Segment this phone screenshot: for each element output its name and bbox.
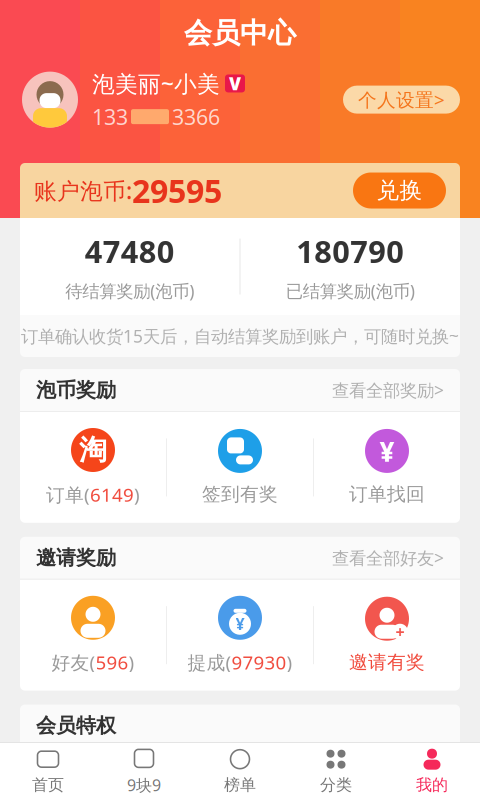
staticText: 榜单 xyxy=(224,775,256,795)
button[interactable]: + xyxy=(314,581,460,690)
staticText: 订单( xyxy=(46,482,90,507)
button[interactable]: 9块9 xyxy=(96,740,192,800)
button[interactable]: 查看全部奖励> xyxy=(332,378,444,401)
staticText: ¥ xyxy=(379,432,395,469)
staticText: 签到有奖 xyxy=(202,483,278,506)
button[interactable]: 兑换 xyxy=(353,172,446,208)
staticText: ¥ xyxy=(235,613,244,634)
button[interactable]: ¥ xyxy=(167,580,313,691)
staticText: 邀请奖励 xyxy=(36,545,116,570)
button[interactable]: 好友( xyxy=(20,580,166,691)
staticText: 个人设置> xyxy=(358,87,445,112)
staticText: 47480 xyxy=(85,231,175,271)
staticText: + xyxy=(395,621,404,642)
staticText: ) xyxy=(286,650,292,675)
staticText: 9块9 xyxy=(127,774,161,796)
button[interactable]: 我的 xyxy=(384,741,480,800)
staticText: 待结算奖励(泡币) xyxy=(65,279,194,302)
button[interactable]: 榜单 xyxy=(192,741,288,800)
staticText: 订单确认收货15天后，自动结算奖励到账户，可随时兑换~ xyxy=(21,324,459,347)
button[interactable]: 首页 xyxy=(0,741,96,800)
staticText: 淘 xyxy=(79,433,107,467)
staticText: 6149 xyxy=(90,482,134,507)
staticText: 兑换 xyxy=(376,177,422,204)
staticText: 提成( xyxy=(187,650,231,675)
staticText: 首页 xyxy=(32,775,64,795)
button[interactable]: 个人设置> xyxy=(343,86,460,114)
staticText: 180790 xyxy=(296,231,404,271)
staticText: 133 xyxy=(92,102,128,131)
staticText: ) xyxy=(134,482,140,507)
staticText: 29595 xyxy=(132,169,222,212)
button[interactable]: 签到有奖 xyxy=(167,413,313,522)
button[interactable]: ¥ xyxy=(314,413,460,522)
staticText: ) xyxy=(128,650,134,675)
staticText: 已结算奖励(泡币) xyxy=(286,279,415,302)
staticText: V xyxy=(229,72,241,95)
staticText: 账户泡币: xyxy=(34,175,132,205)
button[interactable]: 淘 xyxy=(20,412,166,523)
staticText: 会员中心 xyxy=(184,16,296,50)
staticText: 我的 xyxy=(416,775,448,795)
staticText: 查看全部奖励> xyxy=(332,378,444,401)
staticText: 泡美丽~小美 xyxy=(92,68,220,98)
staticText: 泡币奖励 xyxy=(36,378,116,402)
staticText: 会员特权 xyxy=(36,713,116,738)
staticText: 好友( xyxy=(51,650,95,675)
button[interactable]: 查看全部好友> xyxy=(332,546,444,569)
button[interactable]: 分类 xyxy=(288,741,384,800)
staticText: 查看全部好友> xyxy=(332,546,444,569)
staticText: 97930 xyxy=(231,650,286,675)
staticText: 分类 xyxy=(320,775,352,795)
staticText: 订单找回 xyxy=(349,483,425,506)
staticText: 596 xyxy=(95,650,128,675)
staticText: 3366 xyxy=(172,102,220,131)
staticText: 邀请有奖 xyxy=(349,651,425,674)
